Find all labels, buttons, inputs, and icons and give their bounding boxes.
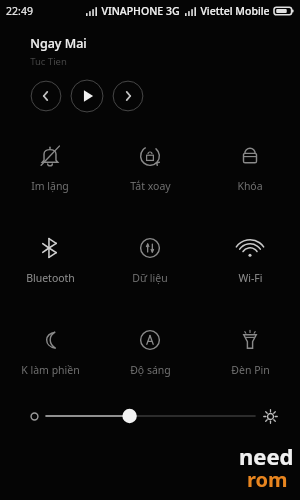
button[interactable]: Play <box>70 79 104 113</box>
staticText: Im lặng <box>31 179 69 193</box>
button[interactable]: Bluetooth <box>0 227 100 291</box>
staticText: 22:49 <box>6 4 33 18</box>
button[interactable]: Im lặng <box>0 135 100 199</box>
staticText: Wi-Fi <box>238 271 263 285</box>
staticText: rom <box>247 466 288 493</box>
button[interactable]: Wi-Fi <box>200 227 300 291</box>
staticText: Ngay Mai <box>30 35 87 52</box>
staticText: Tuc Tien <box>30 55 67 68</box>
button[interactable]: Dữ liệu <box>100 227 200 291</box>
staticText: K làm phiền <box>21 363 80 377</box>
button[interactable]: Độ sáng <box>100 319 200 383</box>
staticText: Tắt xoay <box>130 179 171 193</box>
button[interactable]: K làm phiền <box>0 319 100 383</box>
staticText: need <box>239 441 294 471</box>
staticText: Độ sáng <box>130 363 171 377</box>
staticText: Dữ liệu <box>132 271 168 285</box>
staticText: Bluetooth <box>26 271 75 285</box>
button[interactable]: Khóa <box>200 135 300 199</box>
button[interactable]: Next track <box>112 80 144 112</box>
button[interactable]: Đèn Pin <box>200 319 300 383</box>
staticText: Đèn Pin <box>231 363 270 377</box>
staticText: Viettel Mobile <box>200 4 270 18</box>
button[interactable]: Tắt xoay <box>100 135 200 199</box>
button[interactable]: Brightness <box>0 399 300 433</box>
staticText: VINAPHONE 3G <box>101 4 180 18</box>
button[interactable]: Previous track <box>30 80 62 112</box>
staticText: Khóa <box>237 179 263 193</box>
